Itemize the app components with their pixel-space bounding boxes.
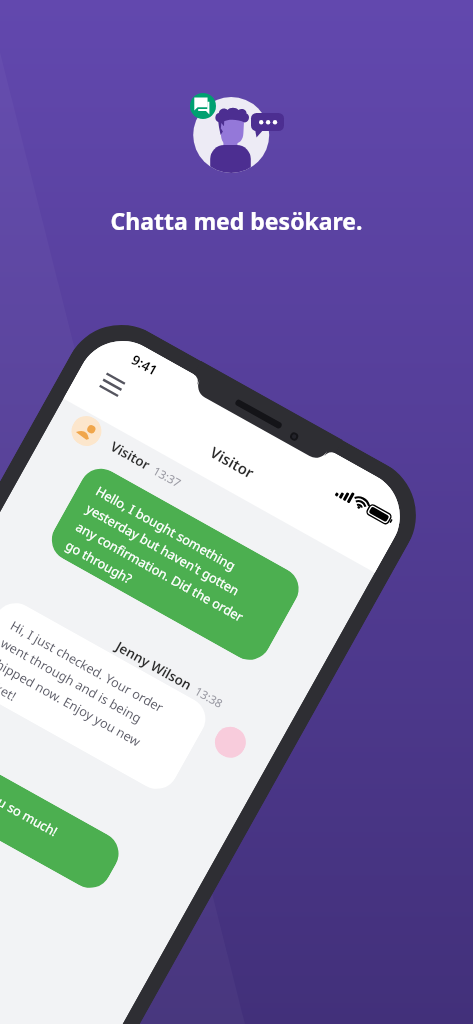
staticText: 13:37 [145, 460, 184, 491]
staticText: 9:41 [128, 350, 161, 379]
staticText: Hi, I just checked. Your order went thro… [0, 616, 167, 770]
staticText: Ah, thank you so much! [0, 756, 61, 839]
button[interactable]: Hi, I just checked. Your order went thro… [0, 595, 213, 797]
staticText: Hello, I bought something yesterday but … [62, 482, 267, 644]
button[interactable]: Ah, thank you so much! [0, 735, 126, 896]
staticText: Visitor [72, 366, 393, 558]
staticText: Visitor [107, 437, 154, 474]
staticText: Chatta med besökare. [0, 205, 473, 236]
staticText: Jenny Wilson [112, 637, 195, 694]
button[interactable]: Menu [92, 364, 133, 405]
staticText: 13:38 [187, 680, 226, 712]
button[interactable]: Hello, I bought something yesterday but … [44, 461, 307, 668]
